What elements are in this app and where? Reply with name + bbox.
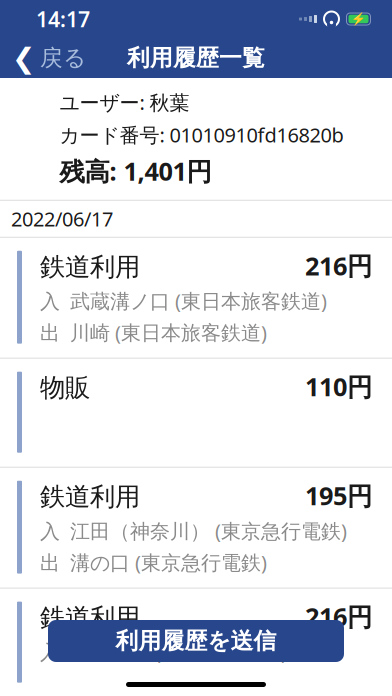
staticText: 鉄道利用 bbox=[40, 481, 140, 512]
staticText: 利用履歴一覧 bbox=[127, 44, 265, 72]
staticText: 出 bbox=[40, 321, 60, 345]
button[interactable]: 鉄道利用 bbox=[0, 238, 392, 359]
staticText: ❮ bbox=[12, 42, 35, 74]
staticText: 江田（神奈川） (東京急行電鉄) bbox=[70, 517, 347, 544]
staticText: 残高: 1,401円 bbox=[59, 154, 211, 188]
staticText: 鉄道利用 bbox=[40, 602, 140, 633]
button[interactable]: 物販 bbox=[0, 359, 392, 468]
staticText: 2022/06/17 bbox=[11, 205, 113, 232]
staticText: 195円 bbox=[305, 479, 372, 512]
staticText: 110円 bbox=[305, 370, 372, 403]
staticText: 入 bbox=[40, 289, 60, 314]
staticText: 溝の口 (東京急行電鉄) bbox=[70, 549, 267, 576]
button[interactable]: 鉄道利用 bbox=[0, 589, 392, 696]
staticText: 入 bbox=[40, 640, 60, 665]
staticText: 川崎 (東日本旅客鉄道) bbox=[70, 319, 267, 346]
staticText: 物販 bbox=[40, 372, 90, 403]
staticText: 戻る bbox=[40, 44, 86, 72]
staticText: 利用履歴を送信 bbox=[115, 627, 276, 655]
staticText: 216円 bbox=[305, 600, 372, 633]
staticText: 216円 bbox=[305, 249, 372, 282]
staticText: 14:17 bbox=[36, 5, 90, 33]
staticText: ユーザー: 秋葉 bbox=[59, 89, 189, 116]
staticText: 武蔵溝ノ口 (東日本旅客鉄道) bbox=[70, 287, 327, 314]
staticText: 出 bbox=[40, 551, 60, 575]
staticText: ⚡ bbox=[351, 12, 366, 26]
staticText: 中央林間 (東京急行電鉄) bbox=[70, 638, 287, 665]
button[interactable]: 利用履歴を送信 bbox=[48, 620, 344, 662]
staticText: 鉄道利用 bbox=[40, 251, 140, 282]
staticText: 入 bbox=[40, 519, 60, 544]
staticText: カード番号: 01010910fd16820b bbox=[59, 122, 343, 148]
button[interactable]: ❮ bbox=[0, 36, 86, 80]
button[interactable]: 鉄道利用 bbox=[0, 468, 392, 589]
